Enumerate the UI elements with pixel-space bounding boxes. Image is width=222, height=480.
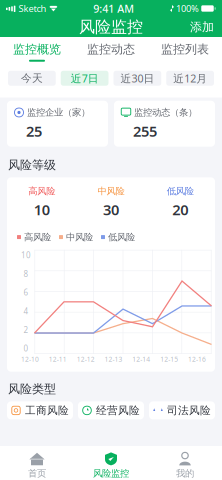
button[interactable]: 近12月 [166,71,214,86]
staticText: 司法风险 [167,404,211,417]
staticText: 20 [172,200,188,219]
staticText: 监控动态 [87,42,135,57]
staticText: 12-11 [49,355,67,364]
button[interactable]: 风险监控 [74,447,148,479]
button[interactable]: 监控企业（家） [7,101,108,147]
staticText: 0 [23,343,28,354]
staticText: 首页 [28,468,46,479]
staticText: 2 [23,324,28,335]
button[interactable]: 监控动态 [74,37,148,65]
button[interactable]: 我的 [148,447,222,479]
staticText: 12-14 [132,355,150,364]
staticText: 风险监控 [93,468,129,479]
staticText: 10 [34,200,50,219]
staticText: 近7日 [71,71,99,85]
button[interactable]: 经营风险 [78,401,144,419]
button[interactable]: 今天 [8,71,56,86]
staticText: 10 [21,250,31,260]
staticText: 工商风险 [25,404,69,417]
staticText: 低风险 [108,231,135,243]
staticText: 12-13 [104,355,122,364]
staticText: 监控列表 [161,42,209,57]
staticText: 近12月 [173,71,207,85]
button[interactable]: 添加 [182,17,222,37]
staticText: 我的 [176,468,194,479]
button[interactable]: 监控概览 [0,37,74,65]
button[interactable]: 司法风险 [149,401,215,419]
button[interactable]: 监控动态（条） [114,101,215,147]
staticText: 经营风险 [96,404,140,417]
button[interactable]: 近7日 [61,71,109,86]
button[interactable]: 监控列表 [148,37,222,65]
staticText: 近30日 [120,71,154,85]
staticText: 6 [23,287,28,298]
button[interactable]: 近30日 [113,71,161,86]
staticText: 风险监控 [79,17,143,37]
staticText: 25 [26,121,42,141]
staticText: 高风险 [28,185,55,197]
staticText: 12-10 [21,355,39,364]
staticText: 中风险 [97,185,124,197]
staticText: 高风险 [24,231,51,243]
staticText: 监控动态（条） [134,107,197,118]
button[interactable]: 首页 [0,447,74,479]
staticText: 低风险 [167,185,194,197]
staticText: 255 [133,121,157,141]
staticText: 今天 [21,72,43,85]
staticText: 8 [23,268,28,279]
staticText: 添加 [190,20,214,34]
staticText: 12-16 [188,355,206,364]
staticText: 风险类型 [8,382,56,396]
staticText: 监控企业（家） [27,107,90,118]
staticText: 中风险 [66,231,93,243]
staticText: Sketch [18,2,46,15]
staticText: 30 [103,200,119,219]
staticText: 100% [176,2,199,15]
staticText: 12-12 [77,355,95,364]
staticText: 12-15 [160,355,178,364]
staticText: 4 [23,306,28,316]
staticText: 9:41 AM [93,1,134,16]
button[interactable]: 工商风险 [7,401,73,419]
staticText: 风险等级 [8,158,56,172]
staticText: 监控概览 [13,42,61,57]
